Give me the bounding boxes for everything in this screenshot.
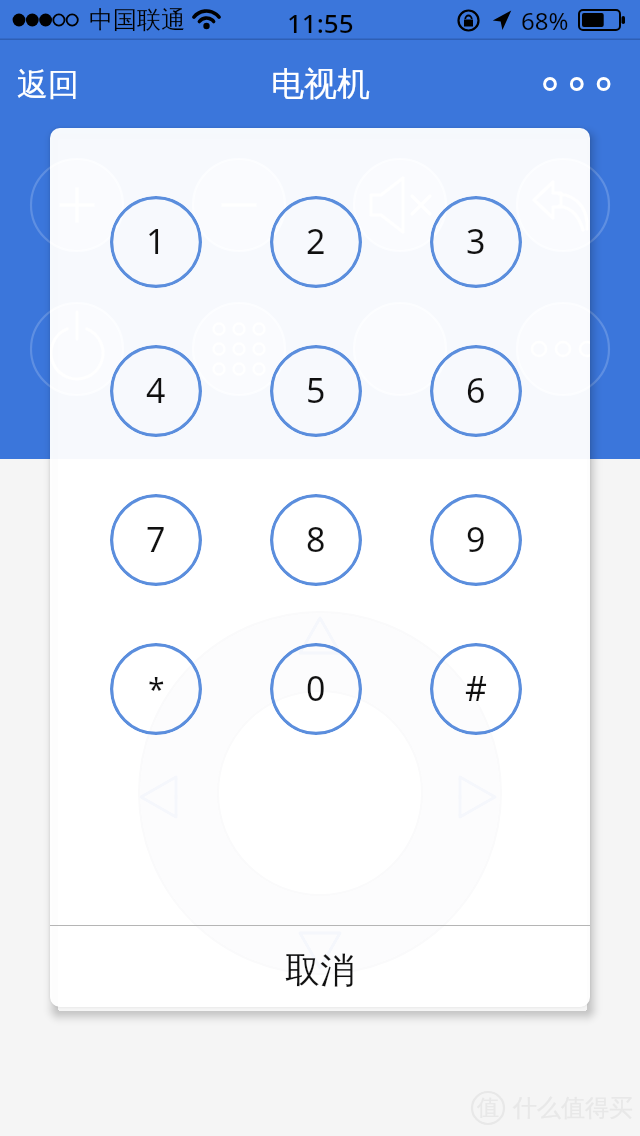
staticText: 6 <box>466 367 486 413</box>
staticText: 68% <box>521 4 569 37</box>
staticText: 8 <box>306 516 326 562</box>
staticText: 3 <box>466 218 486 264</box>
staticText: 9 <box>466 516 486 562</box>
staticText: 中国联通 <box>89 5 185 35</box>
button[interactable]: 7 <box>110 494 202 586</box>
staticText: 1 <box>146 218 166 264</box>
staticText: 2 <box>306 218 326 264</box>
staticText: * <box>148 668 165 709</box>
staticText: 电视机 <box>271 63 370 105</box>
button[interactable]: 8 <box>270 494 362 586</box>
staticText: 什么值得买 <box>513 1093 633 1123</box>
button[interactable]: 6 <box>430 345 522 437</box>
button[interactable]: 5 <box>270 345 362 437</box>
staticText: 4 <box>146 367 166 413</box>
button[interactable]: 4 <box>110 345 202 437</box>
button[interactable]: 9 <box>430 494 522 586</box>
button[interactable]: 0 <box>270 643 362 735</box>
staticText: 11:55 <box>287 5 354 35</box>
staticText: 7 <box>146 516 166 562</box>
staticText: # <box>465 665 487 711</box>
button[interactable]: 取消 <box>50 926 590 1007</box>
button[interactable]: * <box>110 643 202 735</box>
staticText: 返回 <box>17 65 79 104</box>
button[interactable]: 2 <box>270 196 362 288</box>
staticText: 5 <box>306 367 326 413</box>
button[interactable]: More options <box>532 62 620 106</box>
button[interactable]: 1 <box>110 196 202 288</box>
button[interactable]: 返回 <box>3 53 93 116</box>
staticText: 值 <box>477 1094 499 1122</box>
staticText: 取消 <box>285 948 355 992</box>
staticText: 0 <box>306 665 326 711</box>
button[interactable]: # <box>430 643 522 735</box>
button[interactable]: 3 <box>430 196 522 288</box>
